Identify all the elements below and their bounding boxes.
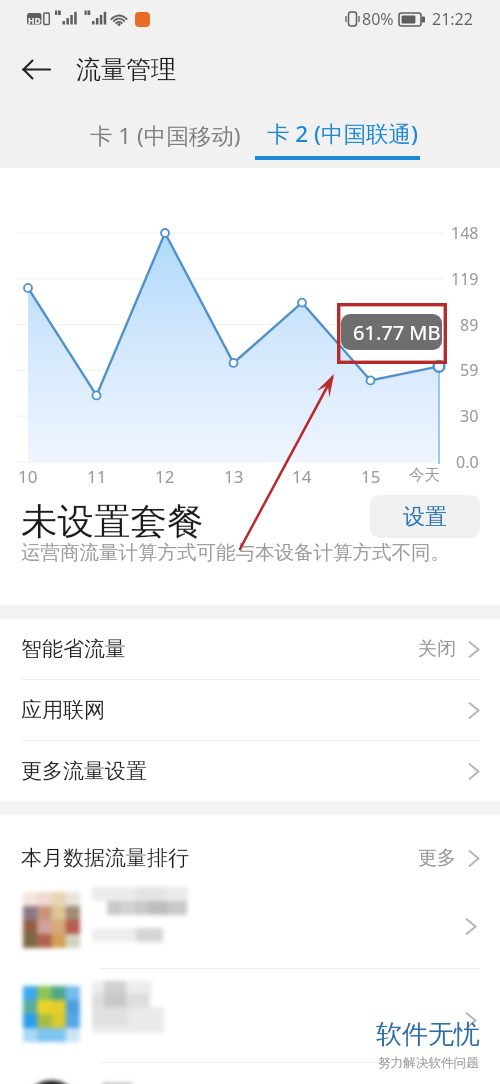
staticText: 14 [292,465,312,488]
staticText: 15 [361,465,381,488]
button[interactable]: 本月数据流量排行 [0,815,500,891]
staticText: HD [28,15,41,27]
staticText: 61.77 MB [353,319,441,346]
button[interactable]: 应用联网 [0,680,500,740]
button[interactable]: 更多流量设置 [0,741,500,801]
staticText: 30 [460,405,479,427]
staticText: 10 [18,465,38,488]
staticText: 59 [460,359,479,381]
button[interactable]: Back [12,45,60,93]
staticText: 设置 [403,503,447,531]
staticText: 关闭 [418,637,456,661]
staticText: 卡 1 (中国移动) [90,120,241,151]
button[interactable] [0,875,500,969]
staticText: 13 [224,465,244,488]
staticText: 148 [451,222,479,244]
staticText: 应用联网 [21,697,105,723]
staticText: 软件无忧 [376,1018,480,1051]
staticText: 11 [87,465,107,488]
staticText: 0.0 [456,451,479,473]
staticText: 流量管理 [76,54,176,85]
staticText: 更多流量设置 [21,758,147,784]
staticText: 努力解决软件问题 [378,1055,479,1071]
staticText: 本月数据流量排行 [21,845,189,871]
button[interactable]: 设置 [370,495,480,538]
button[interactable]: 卡 2 (中国联通) [255,100,420,168]
staticText: 卡 2 (中国联通) [267,118,419,149]
staticText: 80% [362,8,394,30]
staticText: 更多 [418,846,456,870]
staticText: 智能省流量 [21,636,126,662]
staticText: 12 [155,465,175,488]
staticText: 119 [451,268,479,290]
staticText: 21:22 [432,8,473,30]
button[interactable] [0,1063,500,1084]
button[interactable] [0,969,500,1063]
staticText: 未设置套餐 [21,499,204,545]
staticText: 89 [460,314,479,336]
staticText: 运营商流量计算方式可能与本设备计算方式不同。 [21,540,450,565]
staticText: 今天 [409,465,440,485]
button[interactable]: 卡 1 (中国移动) [85,100,245,168]
button[interactable]: 智能省流量 [0,619,500,679]
